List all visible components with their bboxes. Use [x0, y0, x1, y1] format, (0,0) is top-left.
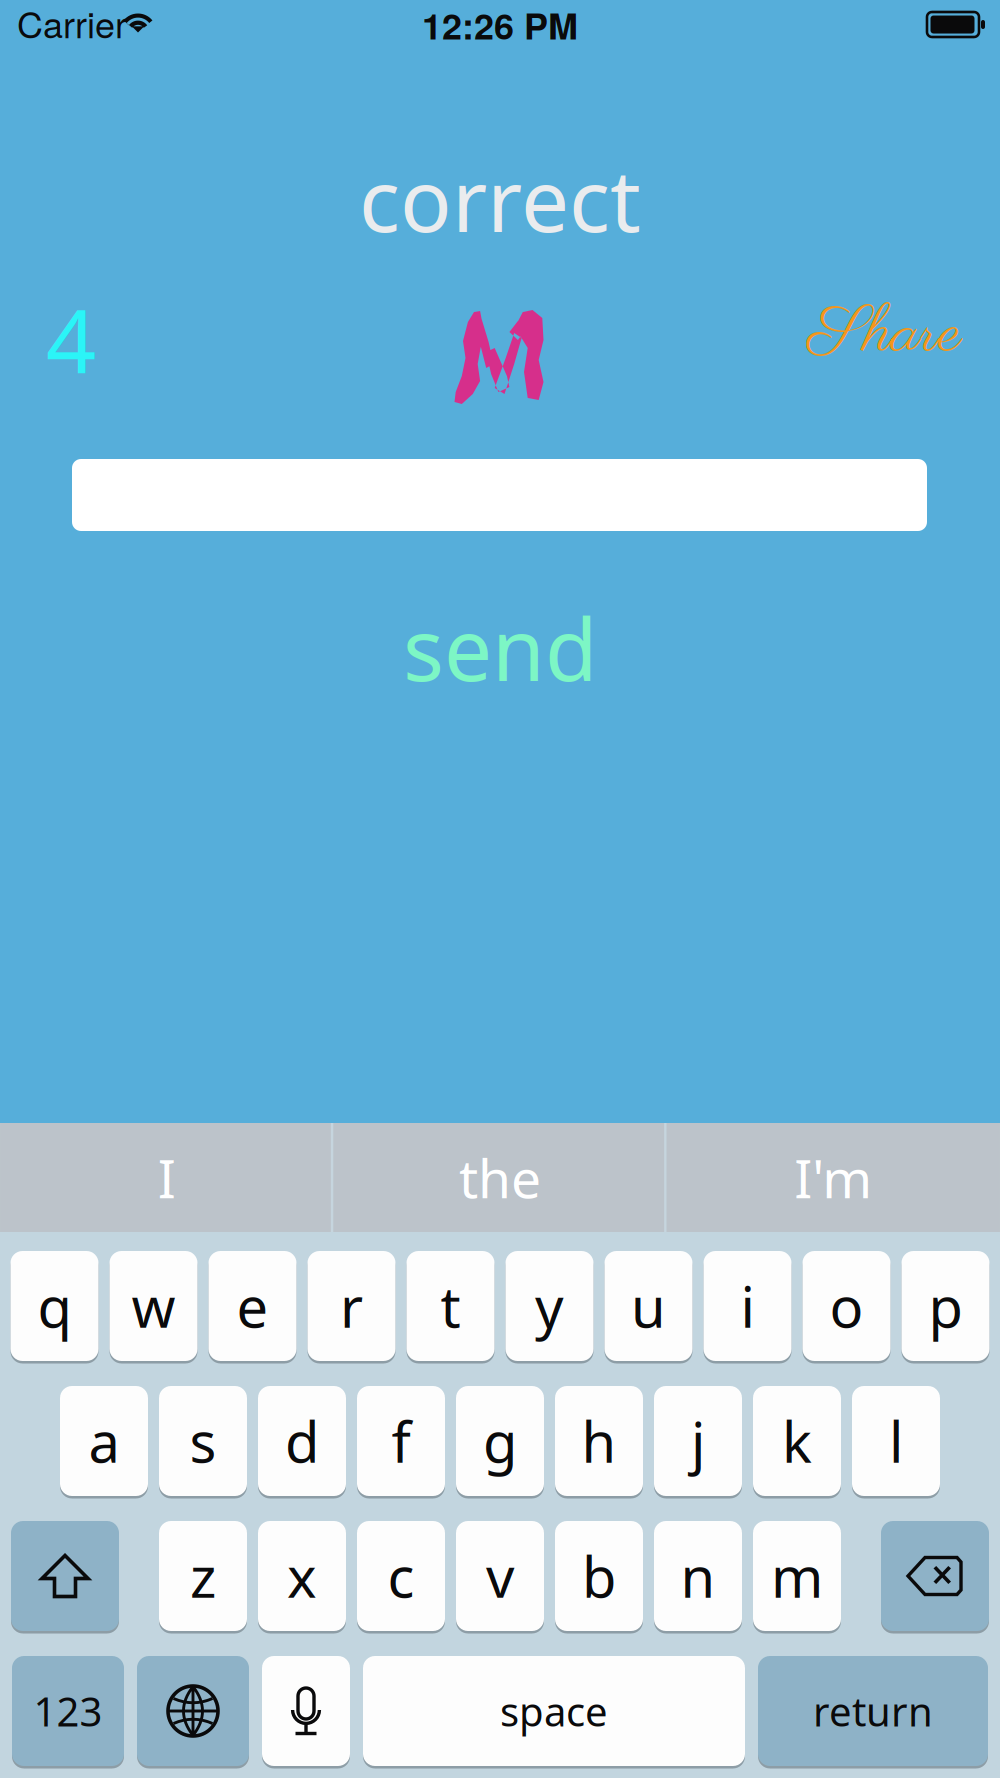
button[interactable]: space — [363, 1656, 745, 1766]
button[interactable]: I'm — [667, 1123, 1000, 1232]
button[interactable]: k — [753, 1386, 841, 1496]
staticText: u — [631, 1269, 666, 1343]
staticText: z — [190, 1539, 216, 1613]
button[interactable]: 123 — [12, 1656, 124, 1766]
staticText: i — [740, 1269, 754, 1343]
staticText: s — [189, 1404, 216, 1478]
button[interactable]: r — [307, 1251, 395, 1361]
staticText: w — [131, 1269, 175, 1343]
staticText: 12:26 PM — [422, 0, 578, 51]
staticText: 123 — [33, 1684, 102, 1737]
button[interactable]: v — [456, 1521, 544, 1631]
staticText: the — [459, 1142, 541, 1213]
staticText: I — [158, 1142, 176, 1213]
staticText: space — [500, 1684, 608, 1737]
button[interactable]: I — [0, 1123, 333, 1232]
button[interactable]: Share — [770, 290, 1000, 380]
staticText: e — [236, 1269, 268, 1343]
button[interactable]: Next keyboard — [137, 1656, 249, 1766]
staticText: x — [287, 1539, 317, 1613]
button[interactable]: l — [852, 1386, 940, 1496]
staticText: 4 — [46, 279, 96, 399]
staticText: p — [928, 1269, 962, 1343]
staticText: j — [691, 1404, 705, 1478]
button[interactable]: p — [901, 1251, 989, 1361]
staticText: t — [440, 1269, 460, 1343]
button[interactable]: h — [555, 1386, 643, 1496]
staticText: return — [813, 1684, 933, 1737]
staticText: f — [391, 1404, 410, 1478]
button[interactable]: 4 — [11, 299, 131, 379]
button[interactable]: m — [753, 1521, 841, 1631]
button[interactable]: z — [159, 1521, 247, 1631]
staticText: v — [486, 1539, 514, 1613]
button[interactable]: s — [159, 1386, 247, 1496]
button[interactable]: e — [208, 1251, 296, 1361]
staticText: d — [285, 1404, 319, 1478]
button[interactable]: return — [758, 1656, 988, 1766]
staticText: m — [771, 1539, 823, 1613]
staticText: n — [680, 1539, 715, 1613]
staticText: a — [88, 1404, 119, 1478]
staticText: h — [581, 1404, 616, 1478]
staticText: l — [889, 1404, 903, 1478]
staticText: b — [582, 1539, 616, 1613]
button[interactable]: n — [654, 1521, 742, 1631]
button[interactable]: y — [505, 1251, 593, 1361]
button[interactable]: send — [0, 608, 1000, 688]
staticText: g — [483, 1404, 517, 1478]
button[interactable]: f — [357, 1386, 445, 1496]
staticText: y — [535, 1269, 564, 1343]
button[interactable]: o — [802, 1251, 890, 1361]
button[interactable]: t — [406, 1251, 494, 1361]
staticText: Carrier — [17, 0, 127, 49]
button[interactable]: w — [109, 1251, 197, 1361]
staticText: q — [37, 1269, 71, 1343]
staticText: Share — [808, 291, 962, 379]
button[interactable]: x — [258, 1521, 346, 1631]
button[interactable]: u — [604, 1251, 692, 1361]
button[interactable]: c — [357, 1521, 445, 1631]
button[interactable]: Delete — [881, 1521, 989, 1631]
button[interactable]: Dictate — [262, 1656, 350, 1766]
button[interactable]: a — [60, 1386, 148, 1496]
button[interactable]: j — [654, 1386, 742, 1496]
staticText: k — [782, 1404, 812, 1478]
staticText: r — [340, 1269, 363, 1343]
staticText: I'm — [794, 1142, 872, 1213]
button[interactable]: g — [456, 1386, 544, 1496]
button[interactable]: q — [10, 1251, 98, 1361]
staticText: o — [829, 1269, 863, 1343]
button[interactable]: Shift — [11, 1521, 119, 1631]
staticText: send — [403, 591, 597, 705]
button[interactable]: the — [333, 1123, 667, 1232]
button[interactable]: d — [258, 1386, 346, 1496]
staticText: correct — [359, 142, 641, 256]
staticText: c — [387, 1539, 414, 1613]
button[interactable]: i — [703, 1251, 791, 1361]
button[interactable]: b — [555, 1521, 643, 1631]
